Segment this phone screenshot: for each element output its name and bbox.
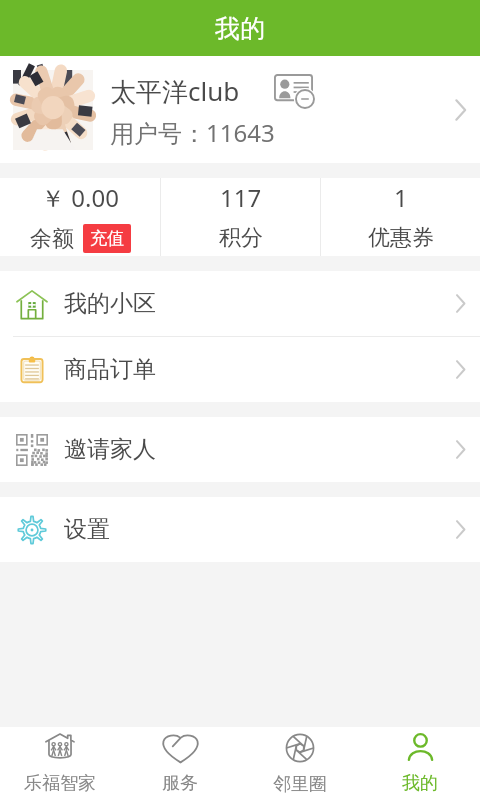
- staticText: 设置: [64, 515, 110, 544]
- button[interactable]: 117: [161, 178, 320, 252]
- staticText: ￥ 0.00: [41, 181, 119, 214]
- button[interactable]: 邀请家人: [0, 417, 480, 482]
- staticText: 充值: [90, 228, 124, 249]
- staticText: 商品订单: [64, 355, 156, 384]
- staticText: 优惠券: [368, 224, 434, 252]
- staticText: 余额: [30, 225, 74, 253]
- button[interactable]: 1: [321, 178, 480, 252]
- staticText: 117: [220, 181, 262, 214]
- staticText: 我的小区: [64, 289, 156, 318]
- staticText: 1: [394, 181, 408, 214]
- button[interactable]: 邻里圈: [240, 732, 360, 796]
- button[interactable]: ￥ 0.00: [0, 178, 160, 253]
- button[interactable]: 乐福智家: [0, 732, 120, 795]
- button[interactable]: 太平洋club: [0, 56, 480, 163]
- staticText: 我的: [402, 772, 438, 795]
- other: Account card: [274, 74, 314, 108]
- staticText: 服务: [162, 772, 198, 795]
- staticText: 积分: [219, 224, 263, 252]
- staticText: 邀请家人: [64, 435, 156, 464]
- staticText: 我的: [215, 13, 265, 44]
- button[interactable]: 商品订单: [0, 337, 480, 402]
- staticText: 太平洋club: [110, 73, 240, 109]
- staticText: 用户号：11643: [110, 116, 275, 149]
- button[interactable]: 我的: [360, 732, 480, 795]
- button[interactable]: 充值: [83, 224, 131, 253]
- button[interactable]: 服务: [120, 732, 240, 795]
- button[interactable]: 设置: [0, 497, 480, 562]
- button[interactable]: 我的小区: [0, 271, 480, 336]
- staticText: 乐福智家: [24, 772, 96, 795]
- staticText: 邻里圈: [273, 773, 327, 796]
